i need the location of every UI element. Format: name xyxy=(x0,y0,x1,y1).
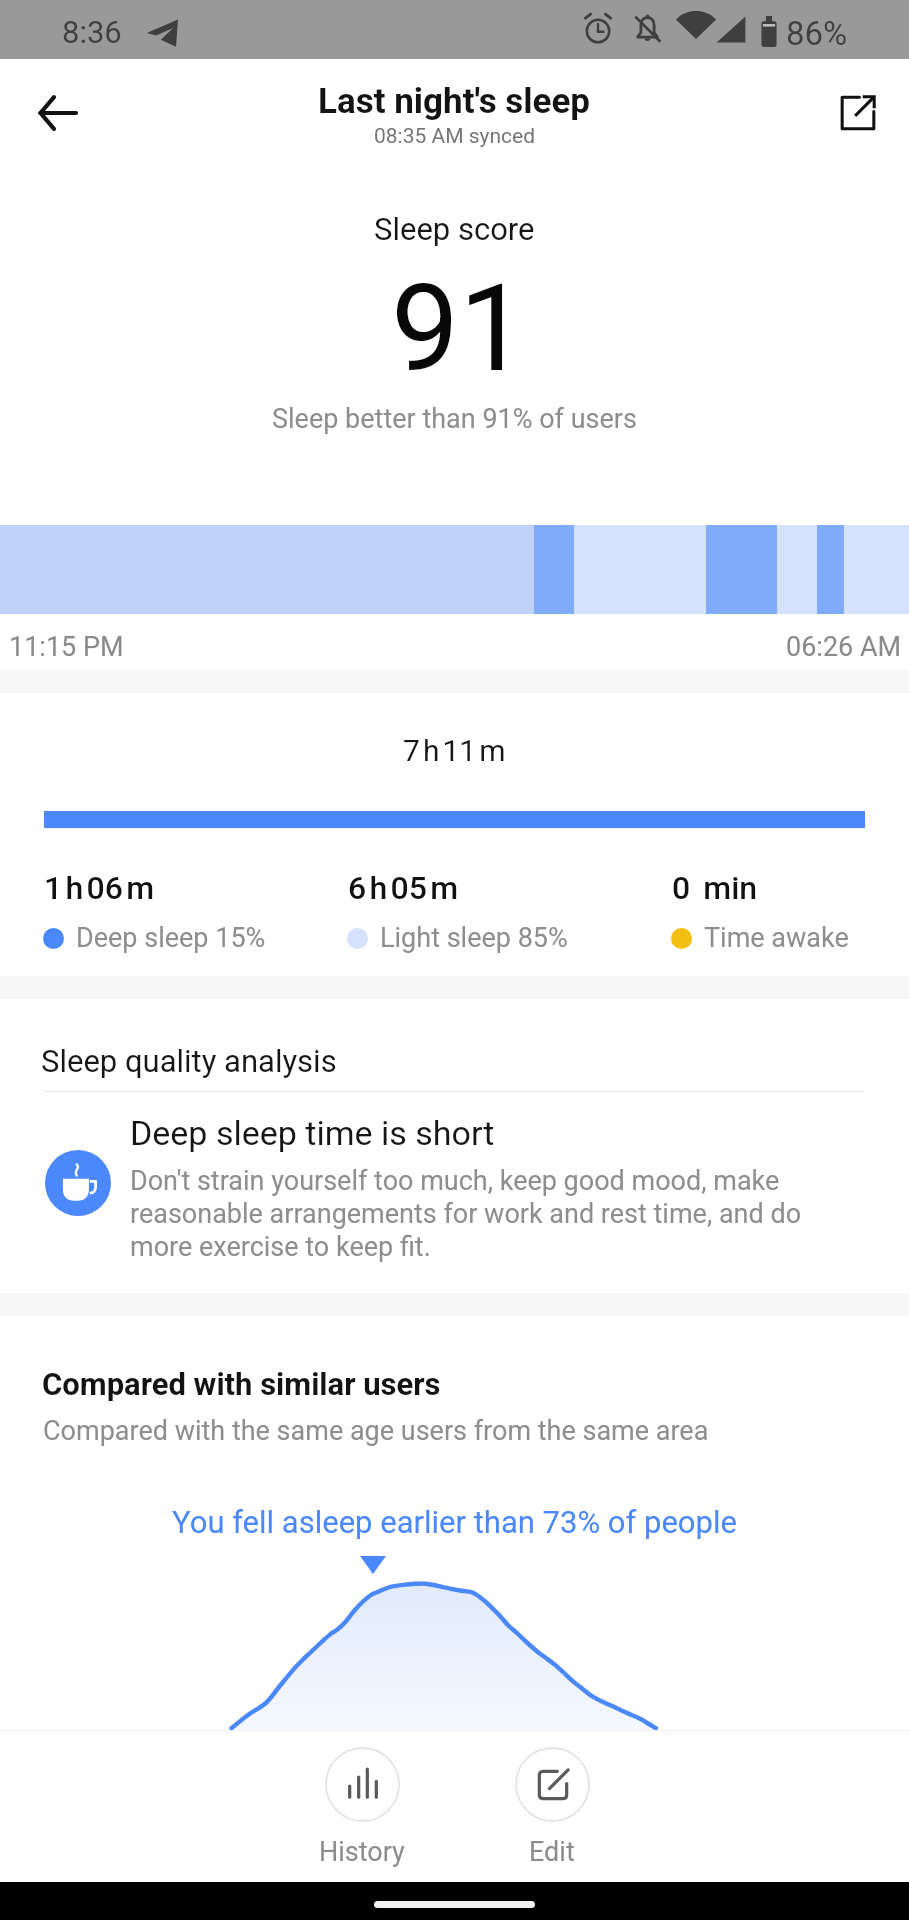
staticText: 11:15 PM xyxy=(9,631,124,663)
staticText: 0 min xyxy=(672,869,758,907)
staticText: History xyxy=(319,1836,405,1868)
staticText: Sleep quality analysis xyxy=(41,1043,337,1079)
button[interactable]: Back xyxy=(29,85,85,141)
staticText: Sleep better than 91% of users xyxy=(272,403,637,435)
staticText: 06:26 AM xyxy=(786,631,902,663)
staticText: Last night's sleep xyxy=(318,81,591,122)
staticText: 86% xyxy=(786,14,848,53)
staticText: Compared with similar users xyxy=(42,1366,441,1402)
staticText: 6 h 05 m xyxy=(348,869,459,907)
staticText: 91 xyxy=(391,258,528,400)
staticText: Don't strain yourself too much, keep goo… xyxy=(130,1165,830,1263)
staticText: Sleep score xyxy=(374,211,535,247)
staticText: 08:35 AM synced xyxy=(374,124,536,149)
staticText: 7 h 11 m xyxy=(403,733,506,768)
staticText: 8:36 xyxy=(62,14,122,50)
button[interactable]: History xyxy=(307,1747,417,1868)
staticText: Deep sleep time is short xyxy=(130,1113,495,1153)
staticText: You fell asleep earlier than 73% of peop… xyxy=(0,1504,909,1540)
staticText: 1 h 06 m xyxy=(44,869,155,907)
staticText: Deep sleep 15% xyxy=(76,922,266,954)
staticText: Edit xyxy=(529,1836,575,1868)
button[interactable]: Edit xyxy=(497,1747,607,1868)
button[interactable]: Share xyxy=(829,84,886,141)
staticText: Light sleep 85% xyxy=(380,922,568,954)
staticText: Compared with the same age users from th… xyxy=(43,1415,709,1447)
staticText: Time awake xyxy=(704,922,849,954)
